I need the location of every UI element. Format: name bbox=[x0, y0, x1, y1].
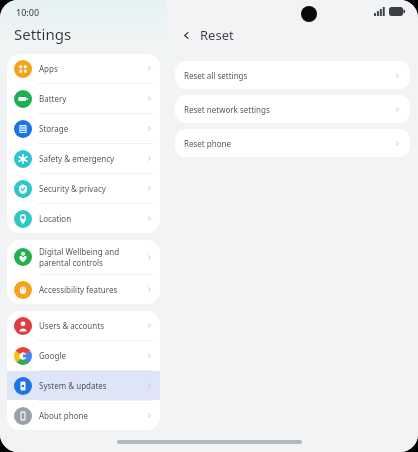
button[interactable]: Location bbox=[7, 204, 160, 233]
staticText: Reset all settings bbox=[184, 70, 394, 81]
staticText: Reset network settings bbox=[184, 104, 394, 115]
button[interactable]: Reset network settings bbox=[175, 95, 410, 123]
staticText: Accessibility features bbox=[39, 284, 118, 295]
staticText: Settings bbox=[14, 24, 72, 44]
staticText: Storage bbox=[39, 123, 69, 134]
button[interactable]: About phone bbox=[7, 401, 160, 430]
staticText: About phone bbox=[39, 410, 88, 421]
button[interactable]: Reset phone bbox=[175, 129, 410, 157]
button[interactable]: Security & privacy bbox=[7, 174, 160, 203]
button[interactable]: Back bbox=[175, 24, 197, 46]
button[interactable]: Google bbox=[7, 341, 160, 370]
button[interactable]: Digital Wellbeing and bbox=[7, 240, 160, 274]
button[interactable]: Reset all settings bbox=[175, 61, 410, 89]
staticText: Google bbox=[39, 350, 66, 361]
staticText: Reset bbox=[200, 26, 234, 44]
button[interactable]: Storage bbox=[7, 114, 160, 143]
staticText: Safety & emergency bbox=[39, 153, 115, 164]
staticText: Location bbox=[39, 213, 72, 224]
staticText: Digital Wellbeing and bbox=[39, 246, 120, 257]
staticText: Users & accounts bbox=[39, 320, 104, 331]
staticText: Reset phone bbox=[184, 138, 394, 149]
button[interactable]: Battery bbox=[7, 84, 160, 113]
staticText: 10:00 bbox=[16, 6, 40, 18]
staticText: Battery bbox=[39, 93, 67, 104]
button[interactable]: System & updates bbox=[7, 371, 160, 400]
staticText: System & updates bbox=[39, 380, 107, 391]
staticText: parental controls bbox=[39, 257, 103, 268]
button[interactable]: Accessibility features bbox=[7, 275, 160, 304]
staticText: Security & privacy bbox=[39, 183, 106, 194]
button[interactable]: Apps bbox=[7, 54, 160, 83]
button[interactable]: Safety & emergency bbox=[7, 144, 160, 173]
staticText: Apps bbox=[39, 63, 58, 74]
button[interactable]: Users & accounts bbox=[7, 311, 160, 340]
